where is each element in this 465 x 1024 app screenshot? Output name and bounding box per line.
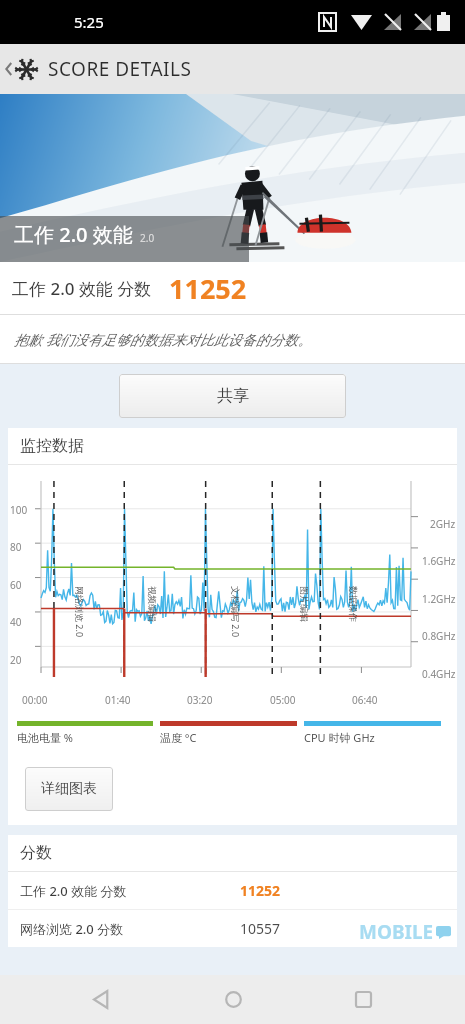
staticText: 40 xyxy=(10,615,22,629)
button[interactable]: 网络浏览 2.0 分数 xyxy=(8,910,457,947)
staticText: 详细图表 xyxy=(41,780,97,798)
staticText: 03:20 xyxy=(187,693,213,707)
button[interactable]: 详细图表 xyxy=(25,767,113,811)
staticText: 工作 2.0 效能 分数 xyxy=(12,277,152,300)
staticText: 网络浏览 2.0 xyxy=(74,586,86,638)
staticText: 0.4GHz xyxy=(422,667,456,681)
staticText: 视频编辑 xyxy=(147,586,158,622)
staticText: 5:25 xyxy=(74,12,104,32)
staticText: 100 xyxy=(10,503,28,517)
staticText: 温度 °C xyxy=(160,730,197,745)
staticText: SCORE DETAILS xyxy=(48,56,192,82)
staticText: 0.8GHz xyxy=(422,629,456,643)
staticText: 抱歉 我们没有足够的数据来对比此设备的分数。 xyxy=(14,330,312,349)
staticText: 图片编辑 xyxy=(299,586,310,622)
staticText: 电池电量 % xyxy=(17,730,74,745)
staticText: 05:00 xyxy=(270,693,296,707)
staticText: 80 xyxy=(10,540,22,554)
staticText: 00:00 xyxy=(22,693,48,707)
staticText: 工作 2.0 效能 分数 xyxy=(20,882,127,900)
staticText: 共享 xyxy=(217,386,249,406)
staticText: 数据操作 xyxy=(348,586,359,622)
staticText: 10557 xyxy=(240,919,281,938)
button[interactable]: Recents xyxy=(335,975,391,1024)
staticText: 01:40 xyxy=(105,693,131,707)
staticText: 监控数据 xyxy=(20,436,84,456)
staticText: 工作 2.0 效能 xyxy=(14,221,133,248)
staticText: 60 xyxy=(10,578,22,592)
staticText: 分数 xyxy=(20,843,52,863)
staticText: CPU 时钟 GHz xyxy=(304,730,375,745)
staticText: 1.6GHz xyxy=(422,554,456,568)
staticText: 1.2GHz xyxy=(422,592,456,606)
button[interactable]: SCORE DETAILS xyxy=(0,44,465,94)
button[interactable]: Back xyxy=(74,975,130,1024)
staticText: MOBILE xyxy=(359,919,434,945)
staticText: 网络浏览 2.0 分数 xyxy=(20,920,124,938)
staticText: 20 xyxy=(10,653,22,667)
staticText: 2GHz xyxy=(430,517,456,531)
staticText: 11252 xyxy=(240,881,281,900)
staticText: 文档编写 2.0 xyxy=(230,586,242,638)
staticText: 06:40 xyxy=(352,693,378,707)
staticText: 2.0 xyxy=(140,231,155,245)
button[interactable]: Home xyxy=(205,975,261,1024)
button[interactable]: 工作 2.0 效能 分数 xyxy=(8,872,457,909)
staticText: 11252 xyxy=(169,270,247,307)
button[interactable]: 共享 xyxy=(119,374,346,418)
